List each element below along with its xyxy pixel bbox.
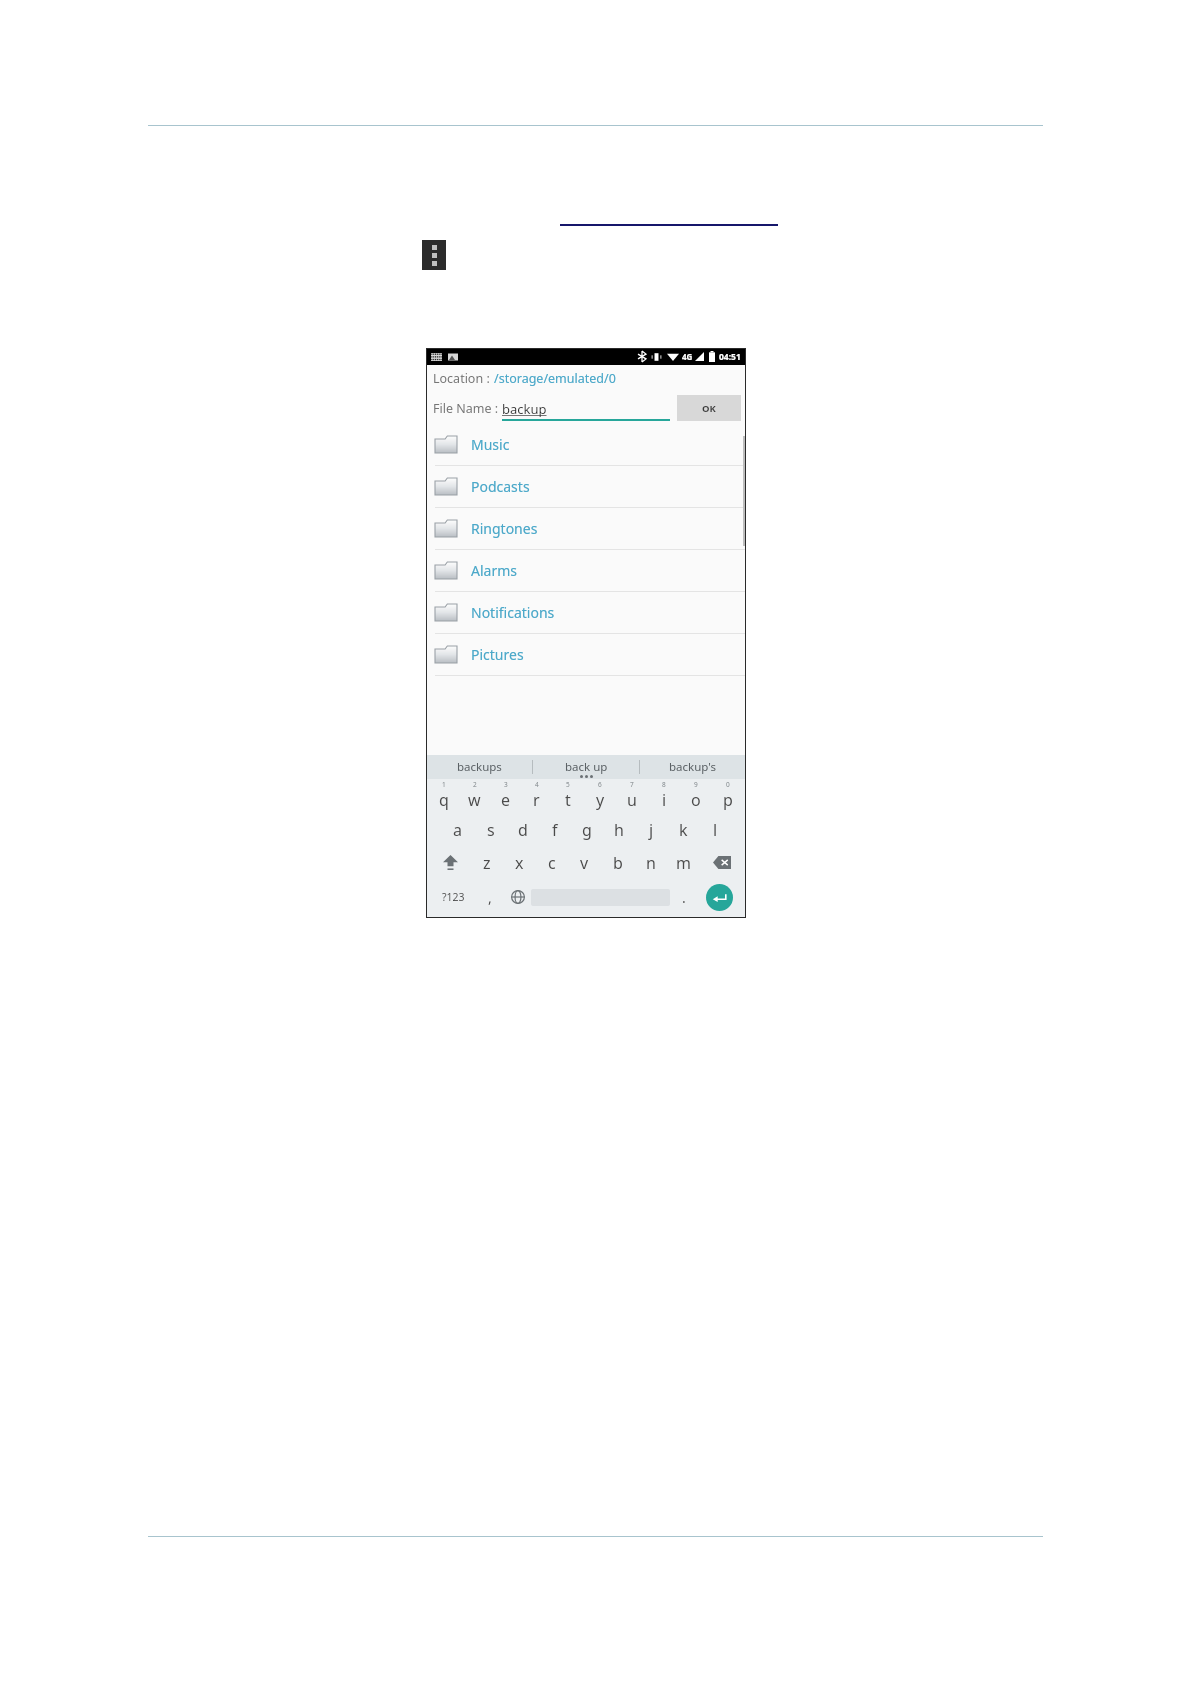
button[interactable]: OK bbox=[677, 395, 741, 421]
button[interactable]: o bbox=[680, 789, 712, 811]
staticText: Podcasts bbox=[471, 477, 530, 496]
button[interactable]: Pictures bbox=[426, 634, 746, 676]
staticText: Music bbox=[471, 435, 510, 454]
staticText: c bbox=[548, 852, 556, 874]
staticText: . bbox=[682, 888, 686, 907]
staticText: 5 bbox=[566, 780, 570, 789]
button[interactable]: s bbox=[474, 813, 507, 846]
staticText: n bbox=[646, 852, 656, 874]
button[interactable]: back up bbox=[533, 755, 639, 779]
staticText: x bbox=[515, 852, 524, 874]
staticText: p bbox=[723, 789, 733, 811]
staticText: y bbox=[596, 789, 605, 811]
staticText: q bbox=[439, 789, 449, 811]
button[interactable]: r bbox=[521, 789, 552, 811]
button[interactable]: e bbox=[490, 789, 521, 811]
staticText: Notifications bbox=[471, 603, 555, 622]
button[interactable]: d bbox=[507, 813, 539, 846]
staticText: a bbox=[453, 819, 462, 841]
staticText: g bbox=[582, 819, 592, 841]
staticText: b bbox=[613, 852, 623, 874]
staticText: 2 bbox=[473, 780, 477, 789]
staticText: u bbox=[627, 789, 637, 811]
button[interactable]: i bbox=[648, 789, 680, 811]
button[interactable]: y bbox=[584, 789, 616, 811]
button[interactable]: Shift bbox=[429, 846, 471, 879]
staticText: 0 bbox=[726, 780, 730, 789]
button[interactable]: v bbox=[568, 846, 601, 879]
staticText: Alarms bbox=[471, 561, 517, 580]
button[interactable]: c bbox=[535, 846, 568, 879]
button[interactable]: Enter bbox=[706, 884, 733, 911]
staticText: File Name : bbox=[433, 400, 502, 417]
button[interactable]: w bbox=[459, 789, 490, 811]
staticText: OK bbox=[702, 402, 716, 415]
staticText: s bbox=[487, 819, 495, 841]
button[interactable]: l bbox=[699, 813, 731, 846]
staticText: 4 bbox=[535, 780, 539, 789]
staticText: backup bbox=[502, 400, 547, 418]
staticText: 8 bbox=[662, 780, 666, 789]
button[interactable]: b bbox=[601, 846, 634, 879]
staticText: o bbox=[691, 789, 701, 811]
staticText: r bbox=[533, 789, 540, 811]
staticText: 04:51 bbox=[719, 351, 741, 363]
button[interactable]: a bbox=[441, 813, 474, 846]
button[interactable]: Podcasts bbox=[426, 466, 746, 508]
staticText: k bbox=[679, 819, 688, 841]
button[interactable]: ?123 bbox=[430, 879, 476, 915]
button[interactable]: Music bbox=[426, 424, 746, 466]
staticText: 7 bbox=[630, 780, 634, 789]
staticText: 6 bbox=[598, 780, 602, 789]
staticText: back up bbox=[565, 759, 608, 775]
staticText: j bbox=[649, 819, 654, 841]
button[interactable]: k bbox=[667, 813, 699, 846]
staticText: Ringtones bbox=[471, 519, 538, 538]
button[interactable]: g bbox=[571, 813, 603, 846]
button[interactable]: z bbox=[471, 846, 503, 879]
button[interactable]: , bbox=[476, 879, 504, 915]
staticText: v bbox=[580, 852, 589, 874]
button[interactable]: backup's bbox=[640, 755, 746, 779]
button[interactable]: Change language bbox=[504, 879, 531, 915]
button[interactable]: j bbox=[635, 813, 667, 846]
staticText: t bbox=[565, 789, 571, 811]
staticText: 1 bbox=[442, 780, 446, 789]
button[interactable]: t bbox=[552, 789, 584, 811]
staticText: 9 bbox=[694, 780, 698, 789]
button[interactable]: p bbox=[712, 789, 744, 811]
staticText: Location : bbox=[433, 370, 494, 387]
button[interactable]: Overflow menu bbox=[422, 240, 446, 270]
button[interactable]: . bbox=[670, 879, 697, 915]
staticText: backups bbox=[457, 759, 502, 775]
staticText: l bbox=[713, 819, 718, 841]
button[interactable]: n bbox=[634, 846, 667, 879]
staticText: f bbox=[552, 819, 558, 841]
staticText: w bbox=[468, 789, 481, 811]
button[interactable]: q bbox=[428, 789, 459, 811]
button[interactable]: x bbox=[503, 846, 535, 879]
staticText: h bbox=[614, 819, 624, 841]
button[interactable]: Alarms bbox=[426, 550, 746, 592]
staticText: ?123 bbox=[442, 890, 465, 904]
staticText: Pictures bbox=[471, 645, 524, 664]
staticText: z bbox=[483, 852, 491, 874]
button[interactable]: backups bbox=[426, 755, 532, 779]
button[interactable]: Backspace bbox=[700, 846, 743, 879]
staticText: d bbox=[518, 819, 528, 841]
staticText: m bbox=[676, 852, 691, 874]
staticText: e bbox=[501, 789, 511, 811]
staticText: i bbox=[662, 789, 667, 811]
staticText: /storage/emulated/0 bbox=[494, 370, 616, 387]
button[interactable]: Notifications bbox=[426, 592, 746, 634]
staticText: 4G bbox=[682, 351, 693, 362]
button[interactable]: h bbox=[603, 813, 635, 846]
button[interactable]: m bbox=[667, 846, 700, 879]
button[interactable]: f bbox=[539, 813, 571, 846]
staticText: backup's bbox=[669, 759, 717, 775]
staticText: 3 bbox=[504, 780, 508, 789]
staticText: , bbox=[488, 888, 492, 907]
button[interactable]: Ringtones bbox=[426, 508, 746, 550]
button[interactable]: u bbox=[616, 789, 648, 811]
